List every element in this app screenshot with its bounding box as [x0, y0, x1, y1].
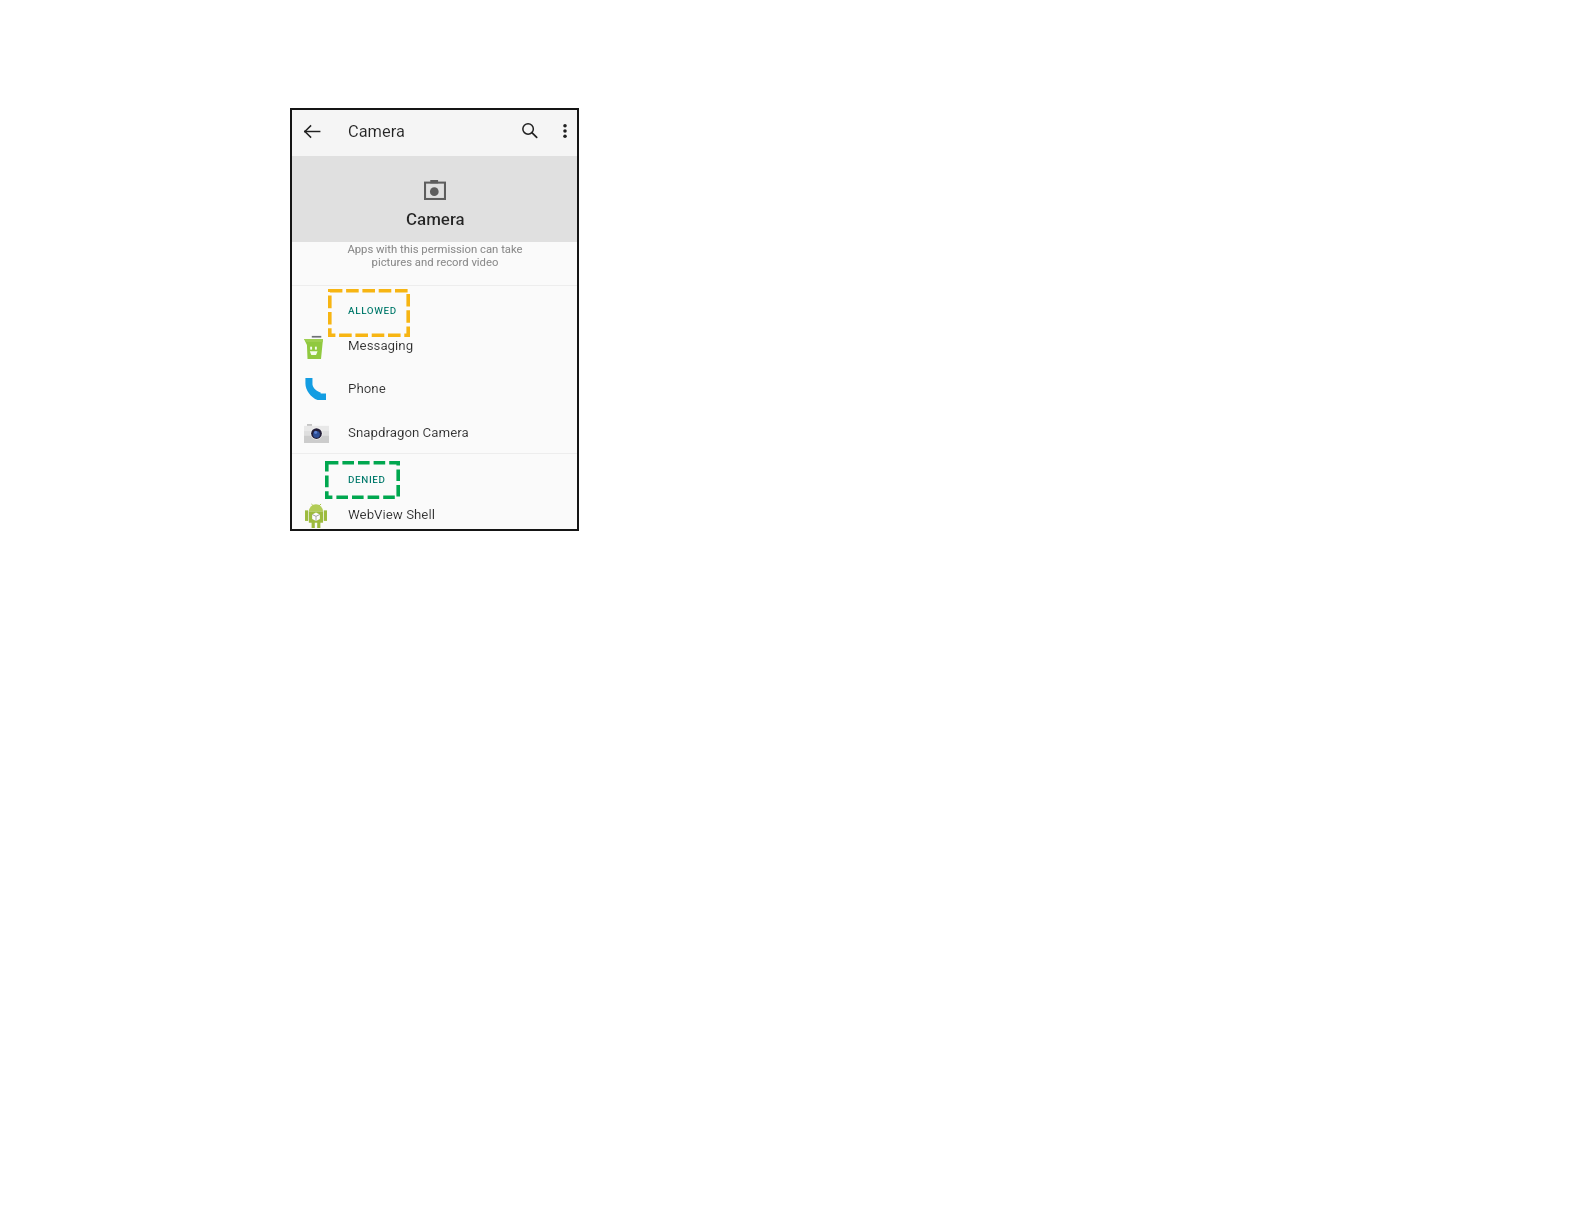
- staticText: DENIED: [348, 474, 386, 486]
- button[interactable]: Search: [515, 116, 545, 146]
- staticText: Camera: [406, 209, 465, 229]
- staticText: Phone: [348, 381, 386, 397]
- other: DENIED highlight: [325, 461, 400, 499]
- staticText: ALLOWED: [348, 305, 397, 317]
- button[interactable]: DENIED: [348, 474, 386, 486]
- button[interactable]: Messaging: [292, 329, 577, 359]
- button[interactable]: More options: [550, 116, 580, 146]
- button[interactable]: Navigate up: [297, 116, 327, 146]
- staticText: Messaging: [348, 338, 414, 354]
- button[interactable]: Snapdragon Camera: [292, 416, 577, 446]
- staticText: WebView Shell: [348, 507, 435, 523]
- button[interactable]: WebView Shell: [292, 498, 577, 528]
- staticText: Apps with this permission can take pictu…: [347, 243, 523, 269]
- button[interactable]: ALLOWED: [348, 305, 397, 317]
- button[interactable]: Phone: [292, 372, 577, 402]
- staticText: Snapdragon Camera: [348, 425, 469, 441]
- other: ALLOWED highlight: [328, 289, 410, 337]
- staticText: Camera: [348, 122, 405, 141]
